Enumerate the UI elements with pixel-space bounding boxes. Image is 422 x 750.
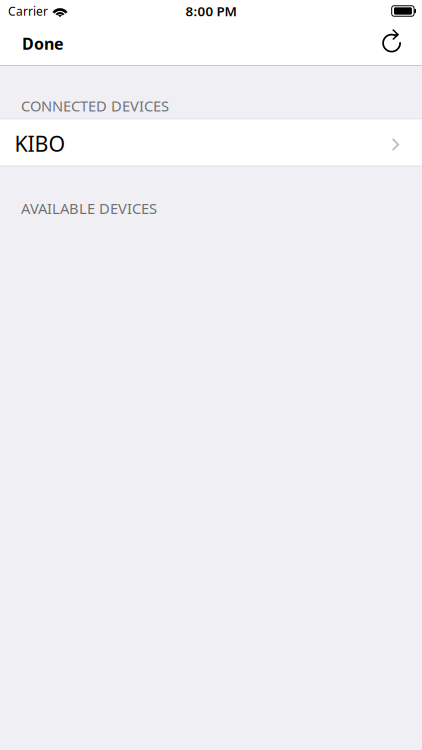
staticText: Carrier (8, 3, 48, 19)
button[interactable]: KIBO (0, 119, 422, 165)
staticText: CONNECTED DEVICES (21, 96, 169, 115)
staticText: Done (22, 33, 64, 54)
staticText: KIBO (14, 129, 65, 158)
button[interactable]: Refresh (366, 22, 422, 65)
staticText: 8:00 PM (185, 2, 236, 20)
staticText: AVAILABLE DEVICES (21, 198, 157, 218)
button[interactable]: Done (0, 22, 78, 65)
